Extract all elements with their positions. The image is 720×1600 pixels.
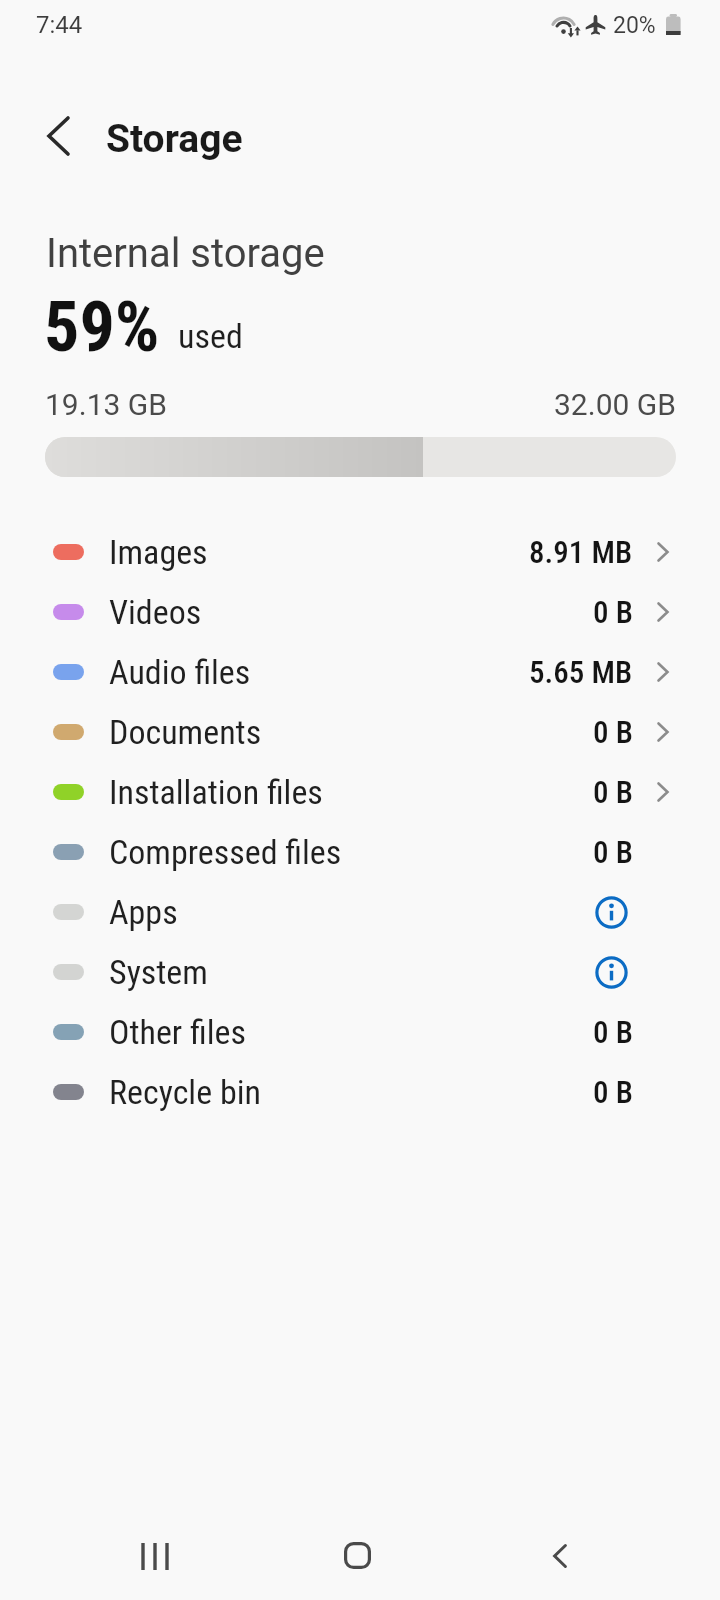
button[interactable]: System — [0, 942, 720, 1002]
staticText: Apps — [109, 892, 178, 932]
staticText: Videos — [109, 592, 202, 632]
staticText: 0 B — [593, 1014, 633, 1050]
button[interactable]: Compressed files — [0, 822, 720, 882]
staticText: 19.13 GB — [45, 387, 167, 422]
staticText: 8.91 MB — [529, 534, 633, 570]
staticText: Documents — [109, 712, 262, 752]
button[interactable]: Other files — [0, 1002, 720, 1062]
staticText: Internal storage — [46, 230, 325, 277]
button[interactable] — [520, 1516, 600, 1596]
button[interactable]: Videos — [0, 582, 720, 642]
staticText: Other files — [109, 1012, 246, 1052]
staticText: 5.65 MB — [529, 654, 633, 690]
staticText: 7:44 — [36, 11, 83, 39]
staticText: Storage — [106, 116, 243, 162]
staticText: System — [109, 952, 208, 992]
button[interactable]: Images — [0, 522, 720, 582]
staticText: 59% — [44, 286, 160, 368]
button[interactable]: Apps — [0, 882, 720, 942]
staticText: 0 B — [593, 714, 633, 750]
staticText: Recycle bin — [109, 1072, 261, 1112]
staticText: used — [178, 316, 243, 356]
button[interactable] — [30, 108, 86, 164]
button[interactable]: Documents — [0, 702, 720, 762]
button[interactable]: Audio files — [0, 642, 720, 702]
button[interactable] — [317, 1515, 397, 1595]
button[interactable] — [115, 1516, 195, 1596]
staticText: Compressed files — [109, 832, 342, 872]
staticText: 0 B — [593, 834, 633, 870]
button[interactable]: Recycle bin — [0, 1062, 720, 1122]
staticText: 0 B — [593, 594, 633, 630]
staticText: Images — [109, 532, 208, 572]
staticText: Installation files — [109, 772, 323, 812]
staticText: 20% — [613, 12, 656, 39]
staticText: Audio files — [109, 652, 251, 692]
staticText: 32.00 GB — [554, 387, 676, 422]
staticText: 0 B — [593, 774, 633, 810]
staticText: 0 B — [593, 1074, 633, 1110]
button[interactable]: Installation files — [0, 762, 720, 822]
